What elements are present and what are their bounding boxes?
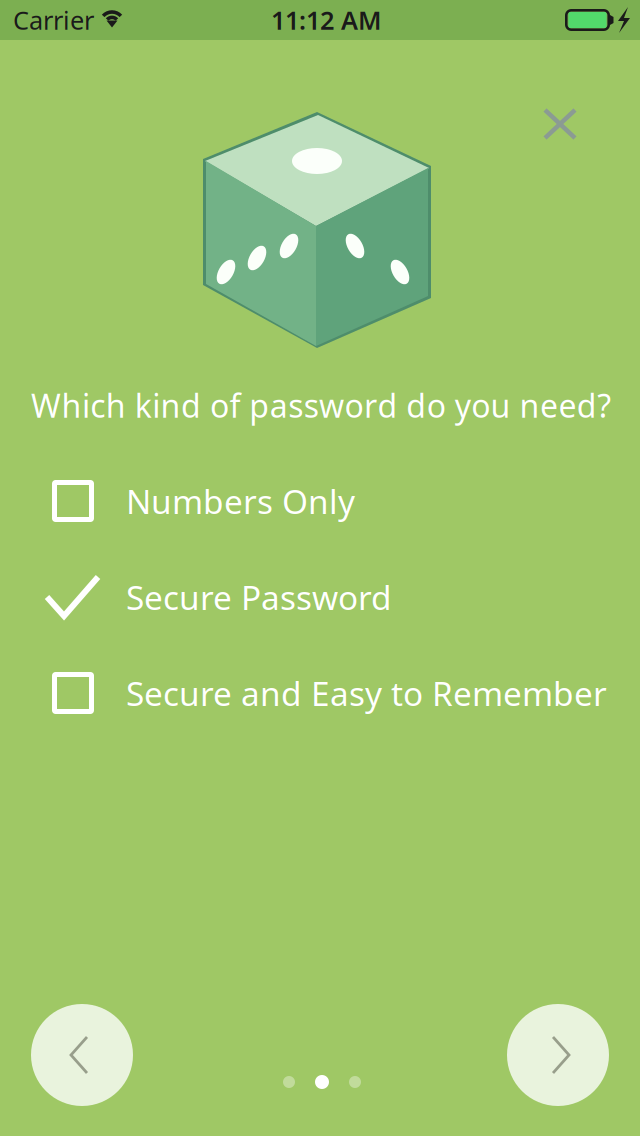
button[interactable]: Close	[525, 90, 595, 158]
staticText: Which kind of password do you need?	[31, 384, 611, 426]
staticText: Carrier	[13, 3, 94, 37]
button[interactable]: Next	[507, 1004, 609, 1106]
button[interactable]: Secure and Easy to Remember	[42, 662, 622, 724]
button[interactable]: Previous	[31, 1004, 133, 1106]
staticText: Secure Password	[126, 575, 392, 619]
button[interactable]: Numbers Only	[42, 470, 622, 532]
button[interactable]: Secure Password	[42, 566, 622, 628]
staticText: Numbers Only	[126, 479, 355, 523]
staticText: Secure and Easy to Remember	[126, 671, 607, 715]
staticText: 11:12 AM	[271, 3, 382, 37]
